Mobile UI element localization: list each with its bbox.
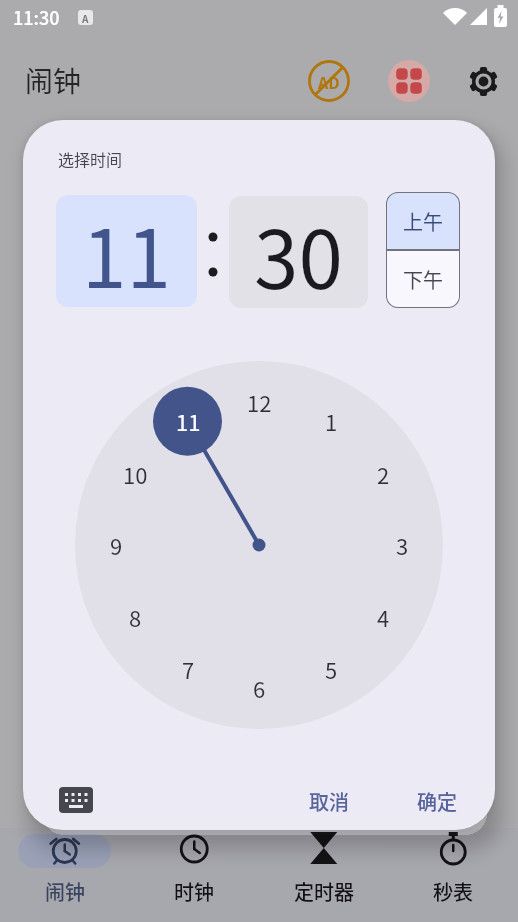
staticText: 选择时间 [58,147,123,170]
staticText: 取消 [309,787,349,816]
staticText: 6 [253,672,266,704]
button[interactable]: 上午 [387,193,459,249]
button[interactable] [388,60,430,102]
button[interactable]: 时钟 [139,874,249,908]
button[interactable] [53,778,99,822]
button[interactable]: 取消 [274,779,384,823]
staticText: 2 [377,458,390,490]
button[interactable]: 闹钟 [10,874,120,908]
button[interactable]: AD [307,59,351,103]
staticText: 闹钟 [45,877,85,906]
staticText: 闹钟 [25,60,82,101]
staticText: 8 [129,601,142,633]
staticText: AD [318,70,340,93]
staticText: 确定 [417,787,457,816]
button[interactable]: 定时器 [269,874,379,908]
staticText: A [82,11,89,25]
staticText: 11 [176,405,201,437]
staticText: 定时器 [294,877,354,906]
button[interactable]: 确定 [382,779,492,823]
staticText: 1 [325,405,338,437]
staticText: 30 [254,196,343,308]
staticText: 10 [123,458,148,490]
button[interactable] [465,63,502,100]
staticText: 5 [325,653,338,685]
staticText: 3 [396,529,409,561]
button[interactable]: 下午 [387,251,459,307]
staticText: 秒表 [433,877,473,906]
staticText: 7 [182,653,195,685]
staticText: 上午 [403,207,443,236]
staticText: 下午 [403,265,443,294]
staticText: 9 [110,529,123,561]
staticText: 4 [377,601,390,633]
staticText: 11:30 [13,4,60,30]
staticText: 时钟 [174,877,214,906]
button[interactable]: 11 [56,195,197,307]
button[interactable]: 秒表 [398,874,508,908]
button[interactable]: 30 [229,196,368,308]
button[interactable] [18,834,111,868]
staticText: 11 [82,195,171,307]
staticText: 12 [247,386,272,418]
